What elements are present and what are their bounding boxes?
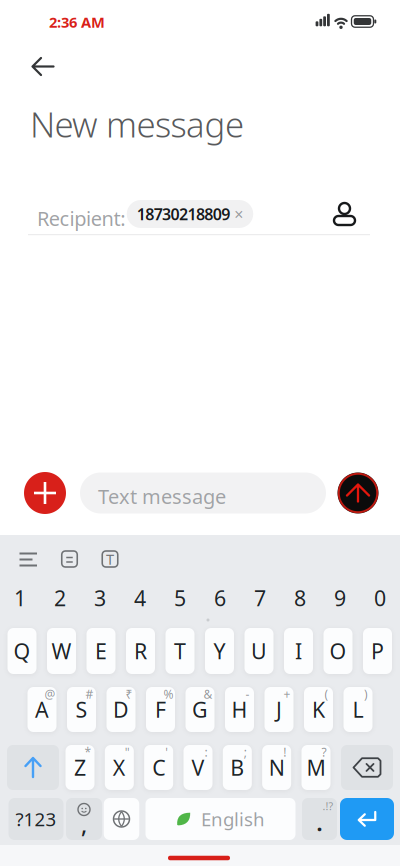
staticText: # <box>85 686 93 702</box>
button[interactable]: 5 <box>161 579 199 617</box>
staticText: + <box>283 686 290 702</box>
button[interactable]: Shift <box>7 745 59 790</box>
button[interactable]: 8 <box>281 579 319 617</box>
staticText: P <box>371 637 384 665</box>
staticText: L <box>352 695 363 724</box>
staticText: T <box>174 637 186 665</box>
staticText: .!? <box>322 799 333 813</box>
button[interactable]: Text editing <box>94 541 126 577</box>
staticText: % <box>163 686 173 702</box>
button[interactable]: F <box>146 687 175 732</box>
staticText: ₹ <box>125 686 132 702</box>
staticText: ' <box>165 744 168 760</box>
staticText: V <box>191 753 204 782</box>
staticText: 4 <box>134 584 146 612</box>
button[interactable]: U <box>244 628 273 674</box>
button[interactable]: 0 <box>361 579 399 617</box>
staticText: , <box>81 809 87 839</box>
button[interactable]: Send <box>337 472 378 513</box>
staticText: S <box>75 695 87 724</box>
staticText: @ <box>44 686 55 702</box>
button[interactable]: Clipboard <box>54 543 85 575</box>
button[interactable]: L <box>343 687 372 732</box>
staticText: I <box>295 637 302 665</box>
button[interactable]: H <box>225 687 254 732</box>
button[interactable]: K <box>304 687 333 732</box>
button[interactable]: I <box>284 628 313 674</box>
staticText: " <box>125 744 130 760</box>
button[interactable]: Choose contact <box>323 193 365 235</box>
button[interactable]: 9 <box>321 579 359 617</box>
staticText: E <box>95 637 107 665</box>
button[interactable]: 4 <box>121 579 159 617</box>
button[interactable]: 3 <box>81 579 119 617</box>
staticText: 5 <box>174 584 186 612</box>
button[interactable]: V <box>183 745 212 790</box>
staticText: ( <box>324 686 328 702</box>
staticText: A <box>35 695 49 724</box>
button[interactable]: C <box>144 745 173 790</box>
button[interactable]: Attach <box>24 472 66 514</box>
button[interactable]: Backspace <box>341 745 393 790</box>
button[interactable]: Back <box>20 45 66 88</box>
staticText: 1 <box>14 584 26 612</box>
staticText: 6 <box>214 584 226 612</box>
button[interactable]: . <box>302 798 337 840</box>
button[interactable]: D <box>106 687 135 732</box>
staticText: Z <box>74 753 86 782</box>
button[interactable]: T <box>165 628 194 674</box>
button[interactable]: 18730218809 <box>127 200 253 228</box>
button[interactable]: Menu <box>11 544 45 574</box>
staticText: Q <box>13 637 30 665</box>
staticText: O <box>329 637 346 665</box>
button[interactable]: J <box>264 687 293 732</box>
staticText: J <box>276 695 282 724</box>
staticText: M <box>306 753 325 782</box>
staticText: ) <box>364 686 368 702</box>
button[interactable]: Q <box>7 628 36 674</box>
button[interactable]: Z <box>65 745 94 790</box>
button[interactable]: B <box>223 745 252 790</box>
button[interactable]: 1 <box>1 579 39 617</box>
staticText: B <box>230 753 244 782</box>
button[interactable]: Text message <box>80 472 326 513</box>
staticText: . <box>316 809 322 837</box>
staticText: 7 <box>254 584 266 612</box>
button[interactable]: 6 <box>201 579 239 617</box>
staticText: ?123 <box>15 807 56 831</box>
staticText: 9 <box>334 584 346 612</box>
staticText: 2 <box>54 584 66 612</box>
button[interactable]: Y <box>205 628 234 674</box>
button[interactable]: R <box>126 628 155 674</box>
staticText: G <box>192 695 208 724</box>
button[interactable]: ?123 <box>8 798 63 840</box>
button[interactable]: W <box>47 628 76 674</box>
button[interactable]: N <box>262 745 291 790</box>
staticText: Text message <box>98 483 226 510</box>
button[interactable]: P <box>363 628 392 674</box>
staticText: * <box>84 744 91 760</box>
button[interactable]: Switch keyboard <box>104 798 139 840</box>
button[interactable]: , <box>66 798 102 840</box>
staticText: - <box>245 686 249 702</box>
staticText: K <box>312 695 325 724</box>
button[interactable]: S <box>67 687 96 732</box>
staticText: C <box>152 753 165 782</box>
staticText: Y <box>213 637 225 665</box>
button[interactable]: G <box>185 687 214 732</box>
button[interactable]: 7 <box>241 579 279 617</box>
button[interactable]: Space <box>145 798 295 840</box>
staticText: 2:36 AM <box>49 12 105 32</box>
staticText: ! <box>283 744 286 760</box>
staticText: H <box>231 695 247 724</box>
button[interactable]: E <box>86 628 115 674</box>
button[interactable]: O <box>323 628 352 674</box>
staticText: & <box>203 686 212 702</box>
staticText: 18730218809 <box>137 203 230 225</box>
button[interactable]: 2 <box>41 579 79 617</box>
staticText: New message <box>30 101 244 147</box>
button[interactable]: Enter <box>340 798 394 840</box>
button[interactable]: A <box>27 687 56 732</box>
button[interactable]: M <box>301 745 330 790</box>
button[interactable]: X <box>105 745 134 790</box>
